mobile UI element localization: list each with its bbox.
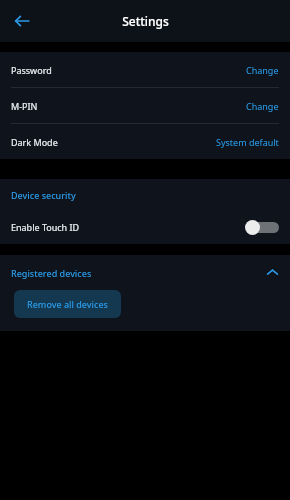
button[interactable]: M-PIN: [0, 88, 290, 123]
staticText: Enable Touch ID: [11, 221, 80, 233]
staticText: Dark Mode: [11, 136, 58, 148]
staticText: Password: [11, 64, 52, 76]
staticText: Device security: [11, 189, 76, 201]
button[interactable]: Registered devices: [0, 255, 290, 290]
staticText: Registered devices: [11, 267, 92, 279]
staticText: M-PIN: [11, 100, 38, 112]
button[interactable]: Password: [0, 52, 290, 87]
button[interactable]: Enable Touch ID: [0, 211, 290, 242]
staticText: System default: [216, 136, 279, 148]
staticText: Remove all devices: [27, 298, 108, 310]
staticText: Change: [246, 100, 279, 112]
staticText: Change: [246, 64, 279, 76]
staticText: Settings: [122, 13, 169, 29]
button[interactable]: Back: [8, 7, 36, 35]
button[interactable]: Remove all devices: [14, 290, 121, 318]
button[interactable]: Dark Mode: [0, 124, 290, 159]
